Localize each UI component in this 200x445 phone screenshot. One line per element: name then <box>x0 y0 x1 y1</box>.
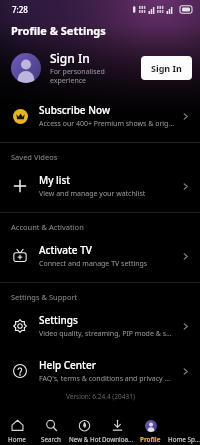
staticText: Activate TV <box>39 243 92 257</box>
button[interactable]: Sign In <box>141 56 192 80</box>
button[interactable]: Search <box>34 418 68 445</box>
staticText: Help Center <box>39 358 96 372</box>
staticText: Settings & Support <box>11 292 78 302</box>
button[interactable]: Home Sp... <box>167 418 200 445</box>
staticText: New & Hot <box>69 435 101 444</box>
staticText: Home <box>8 435 26 444</box>
staticText: Subscribe Now <box>39 103 110 117</box>
staticText: 7:28 <box>12 4 28 15</box>
button[interactable]: Subscribe Now <box>0 95 200 137</box>
button[interactable]: Home <box>0 418 34 445</box>
button[interactable]: Sign In <box>0 44 200 92</box>
staticText: Downloa... <box>102 435 134 444</box>
staticText: Search <box>41 435 61 444</box>
button[interactable]: Help Center <box>0 350 200 392</box>
staticText: Version: 6.24.4 (20431) <box>66 392 135 401</box>
staticText: Access our 400+ Premium shows & original… <box>39 119 174 129</box>
staticText: Saved Videos <box>11 152 58 162</box>
button[interactable]: My list <box>0 165 200 207</box>
staticText: Home Sp... <box>168 435 200 444</box>
staticText: My list <box>39 173 71 187</box>
staticText: FAQ's, terms & conditions and privacy po… <box>39 374 174 384</box>
staticText: Video quality, streaming, PIP mode & sub… <box>39 329 174 339</box>
button[interactable]: New & Hot <box>68 418 101 445</box>
staticText: Account & Activation <box>11 222 84 232</box>
staticText: Profile & Settings <box>11 23 106 38</box>
staticText: Sign In <box>50 50 90 66</box>
staticText: Connect and manage TV settings <box>39 259 148 269</box>
staticText: Settings <box>39 313 78 327</box>
staticText: Sign In <box>151 62 182 74</box>
button[interactable]: Profile <box>134 418 167 445</box>
staticText: For personalised experience <box>50 67 105 85</box>
staticText: Profile <box>140 435 161 444</box>
button[interactable]: Settings <box>0 305 200 347</box>
staticText: View and manage your watchlist <box>39 189 146 199</box>
button[interactable]: Downloa... <box>101 418 134 445</box>
button[interactable]: Activate TV <box>0 235 200 277</box>
